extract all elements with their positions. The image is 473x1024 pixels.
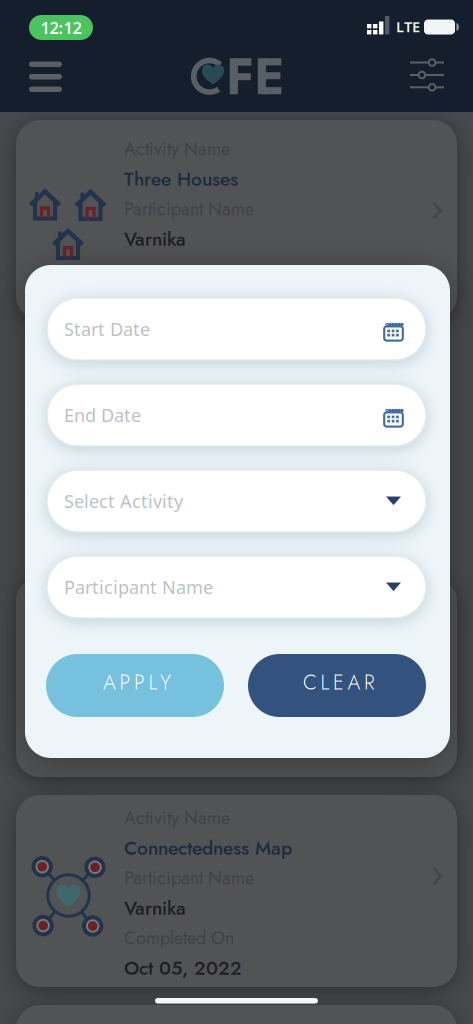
button[interactable]: Start Date [47,298,426,360]
staticText: Varnika [124,894,186,922]
button[interactable]: Menu [29,61,62,92]
button[interactable]: Participant Name [47,556,426,618]
staticText: Three Houses [124,165,238,193]
staticText: Participant Name [124,865,254,891]
button[interactable]: CLEAR [248,654,426,717]
staticText: Completed On [124,925,234,951]
button[interactable]: Activity Name [16,120,457,320]
staticText: Oct 05, 2022 [124,954,242,982]
button[interactable]: APPLY [46,654,224,717]
staticText: Activity Name [124,136,230,162]
staticText: 12:12 [40,16,81,39]
staticText: CLEAR [303,668,375,697]
staticText: Activity Name [124,805,230,831]
staticText: Connectedness Map [124,834,292,862]
staticText: Select Activity [64,489,183,513]
staticText: Start Date [64,317,150,341]
staticText: FE [226,40,285,113]
staticText: LTE [396,16,420,36]
staticText: Varnika [124,225,186,253]
staticText: APPLY [103,668,171,697]
button[interactable]: Select Activity [47,470,426,532]
staticText: Participant Name [124,196,254,222]
button[interactable]: End Date [47,384,426,446]
button[interactable]: Activity Name [16,795,457,987]
staticText: Participant Name [64,575,213,599]
staticText: End Date [64,403,141,427]
button[interactable]: Filter [410,59,444,91]
